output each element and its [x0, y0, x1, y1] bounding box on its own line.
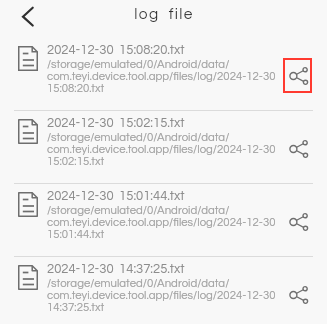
button[interactable]: Share [284, 132, 311, 165]
button[interactable]: 2024-12-30 15:01:44.txt [0, 184, 327, 256]
staticText: /storage/emulated/0/Android/data/ com.te… [47, 277, 276, 313]
staticText: 2024-12-30 14:37:25.txt [47, 260, 185, 276]
button[interactable]: Share [284, 278, 311, 311]
button[interactable]: 2024-12-30 15:08:20.txt [0, 38, 327, 110]
button[interactable]: 2024-12-30 14:37:25.txt [0, 257, 327, 324]
staticText: /storage/emulated/0/Android/data/ com.te… [47, 58, 276, 94]
button[interactable]: 2024-12-30 15:02:15.txt [0, 111, 327, 183]
button[interactable]: Share [284, 59, 311, 92]
button[interactable]: Share [284, 205, 311, 238]
staticText: /storage/emulated/0/Android/data/ com.te… [47, 131, 276, 167]
staticText: 2024-12-30 15:08:20.txt [47, 41, 185, 57]
button[interactable]: Back [14, 5, 38, 29]
staticText: /storage/emulated/0/Android/data/ com.te… [47, 204, 276, 240]
staticText: 2024-12-30 15:02:15.txt [47, 114, 185, 130]
staticText: 2024-12-30 15:01:44.txt [47, 187, 185, 203]
staticText: log file [134, 6, 194, 22]
